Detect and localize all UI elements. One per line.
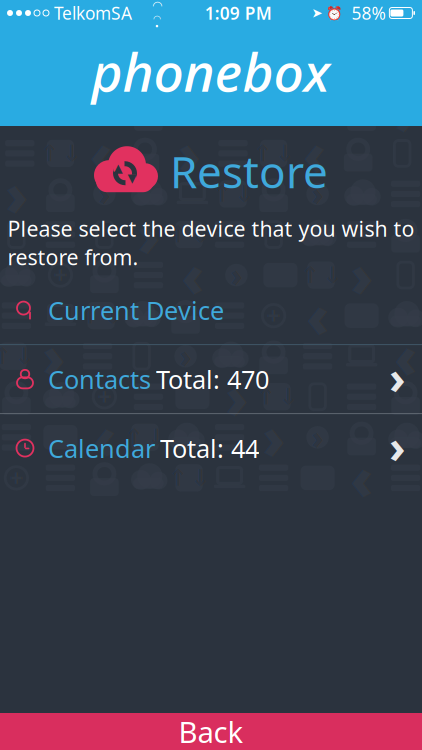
staticText: ⏰ <box>326 5 343 21</box>
staticText: + <box>54 98 67 128</box>
staticText: ↓ <box>275 140 294 166</box>
staticText: Total: 470 <box>156 362 269 396</box>
button[interactable]: Back <box>0 713 422 750</box>
button[interactable]: Current Device <box>0 276 422 344</box>
staticText: ↑ <box>168 222 187 247</box>
staticText: ↓ <box>235 181 254 207</box>
staticText: ‹ <box>303 116 325 191</box>
staticText: ↓ <box>62 140 81 166</box>
staticText: ↑ <box>253 140 272 166</box>
staticText: ‹ <box>93 400 115 474</box>
staticText: TelkomSA <box>54 1 132 24</box>
staticText: + <box>267 301 280 331</box>
staticText: › <box>263 400 285 474</box>
staticText: Total: 44 <box>160 431 259 465</box>
staticText: ↑ <box>0 343 11 369</box>
staticText: › <box>43 319 65 393</box>
staticText: ↑ <box>40 140 59 166</box>
staticText: ▼ <box>127 171 136 185</box>
staticText: ▲ <box>113 161 122 175</box>
staticText: ↑ <box>80 303 99 328</box>
button[interactable]: Contacts <box>0 345 422 413</box>
staticText: Please select the device that you wish t… <box>7 214 414 271</box>
staticText: Restore <box>170 142 328 200</box>
staticText: ↓ <box>323 262 342 288</box>
staticText: › <box>312 174 324 213</box>
staticText: ➤ <box>311 5 322 20</box>
staticText: + <box>54 260 67 290</box>
staticText: ↑ <box>300 262 319 288</box>
staticText: ‹ <box>222 35 244 109</box>
staticText: › <box>389 346 406 407</box>
staticText: ‹ <box>395 319 417 393</box>
staticText: Calendar <box>48 431 155 465</box>
staticText: ‹ <box>351 441 373 515</box>
staticText: ‹ <box>181 238 203 312</box>
staticText: 58% <box>351 1 385 24</box>
staticText: ↑ <box>124 424 143 450</box>
staticText: › <box>180 337 192 376</box>
button[interactable]: Calendar <box>0 414 422 482</box>
staticText: Contacts <box>48 362 151 396</box>
staticText: phonebox <box>91 36 330 106</box>
staticText: › <box>225 360 247 434</box>
staticText: ↑ <box>168 465 187 491</box>
staticText: › <box>389 415 406 476</box>
staticText: › <box>183 53 195 92</box>
staticText: › <box>312 418 324 457</box>
staticText: ↓ <box>147 424 166 450</box>
staticText: 1:09 PM <box>205 1 272 24</box>
staticText: › <box>230 256 242 295</box>
staticText: ↓ <box>15 343 34 369</box>
staticText: Current Device <box>48 293 224 327</box>
staticText: ↓ <box>191 465 210 491</box>
staticText: + <box>98 382 111 412</box>
staticText: › <box>395 76 417 150</box>
staticText: + <box>267 98 280 128</box>
staticText: › <box>98 174 110 213</box>
staticText: ↑ <box>256 384 275 410</box>
staticText: + <box>10 463 23 493</box>
staticText: ‹ <box>307 278 329 353</box>
staticText: ↓ <box>191 222 210 247</box>
staticText: ◠ <box>152 0 162 12</box>
staticText: ◠ <box>153 13 161 24</box>
staticText: ↓ <box>103 303 122 328</box>
staticText: › <box>5 157 27 231</box>
staticText: Back <box>178 712 243 750</box>
staticText: › <box>351 238 373 312</box>
staticText: ‹ <box>90 116 112 191</box>
staticText: ↓ <box>279 384 298 410</box>
staticText: ↑ <box>212 181 231 207</box>
staticText: › <box>178 116 200 191</box>
staticText: › <box>137 197 159 272</box>
